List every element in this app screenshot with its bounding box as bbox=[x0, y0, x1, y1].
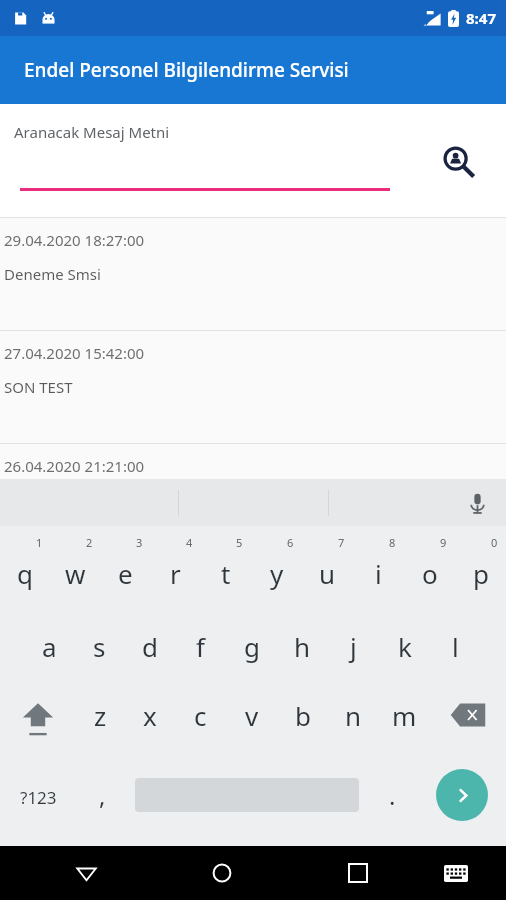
button[interactable]: Ana ekran bbox=[198, 849, 246, 897]
staticText: 26.04.2020 21:21:00 bbox=[4, 456, 145, 476]
staticText: 27.04.2020 15:42:00 bbox=[4, 343, 145, 363]
button[interactable]: 2 bbox=[50, 526, 100, 608]
button[interactable]: c bbox=[175, 684, 226, 762]
button[interactable]: 7 bbox=[302, 526, 353, 608]
button[interactable]: x bbox=[125, 684, 175, 762]
staticText: Aranacak Mesaj Metni bbox=[14, 122, 170, 142]
button[interactable]: Sesli giris bbox=[460, 486, 494, 520]
staticText: k bbox=[398, 629, 412, 664]
staticText: Endel Personel Bilgilendirme Servisi bbox=[24, 57, 349, 83]
button[interactable]: f bbox=[175, 608, 226, 684]
button[interactable]: Son uygulamalar bbox=[334, 849, 382, 897]
button[interactable]: a bbox=[24, 608, 74, 684]
button[interactable]: Gonder bbox=[418, 762, 506, 840]
button[interactable]: Klavyeyi gizle bbox=[432, 849, 480, 897]
staticText: e bbox=[118, 556, 133, 591]
button[interactable]: ?123 bbox=[0, 762, 76, 840]
staticText: 2 bbox=[86, 535, 93, 550]
staticText: 5 bbox=[236, 535, 243, 550]
button[interactable]: z bbox=[75, 684, 125, 762]
staticText: 8:47 bbox=[466, 8, 496, 28]
button[interactable]: 6 bbox=[251, 526, 302, 608]
staticText: x bbox=[143, 698, 157, 733]
button[interactable]: m bbox=[379, 684, 430, 762]
staticText: u bbox=[319, 556, 336, 591]
button[interactable]: 5 bbox=[200, 526, 251, 608]
button[interactable]: 27.04.2020 15:42:00 bbox=[0, 331, 506, 443]
staticText: s bbox=[93, 629, 106, 664]
staticText: SON TEST bbox=[4, 377, 73, 397]
staticText: w bbox=[65, 556, 86, 591]
staticText: h bbox=[294, 629, 311, 664]
staticText: 8 bbox=[389, 535, 396, 550]
button[interactable]: v bbox=[226, 684, 277, 762]
staticText: p bbox=[473, 556, 489, 591]
button[interactable]: 4 bbox=[150, 526, 200, 608]
button[interactable]: 29.04.2020 18:27:00 bbox=[0, 218, 506, 330]
staticText: t bbox=[221, 556, 231, 591]
button[interactable]: g bbox=[226, 608, 277, 684]
button[interactable]: j bbox=[328, 608, 379, 684]
button[interactable]: Shift bbox=[0, 684, 75, 762]
staticText: Deneme Smsi bbox=[4, 264, 101, 284]
staticText: j bbox=[350, 629, 357, 664]
button[interactable]: , bbox=[76, 762, 128, 840]
button[interactable]: Bosluk bbox=[128, 762, 366, 840]
button[interactable]: h bbox=[277, 608, 328, 684]
staticText: 0 bbox=[491, 535, 498, 550]
staticText: i bbox=[375, 556, 382, 591]
button[interactable]: 26.04.2020 21:21:00 bbox=[0, 444, 506, 479]
staticText: z bbox=[94, 698, 107, 733]
button[interactable]: . bbox=[366, 762, 418, 840]
button[interactable]: s bbox=[74, 608, 124, 684]
button[interactable]: 3 bbox=[100, 526, 150, 608]
staticText: ?123 bbox=[20, 786, 57, 809]
staticText: f bbox=[196, 629, 205, 664]
staticText: b bbox=[295, 698, 311, 733]
staticText: l bbox=[452, 629, 459, 664]
button[interactable]: Geri bbox=[62, 849, 110, 897]
staticText: a bbox=[42, 629, 57, 664]
staticText: c bbox=[194, 698, 207, 733]
staticText: g bbox=[244, 629, 260, 664]
button[interactable]: d bbox=[124, 608, 175, 684]
staticText: , bbox=[99, 779, 106, 812]
button[interactable]: b bbox=[277, 684, 328, 762]
staticText: r bbox=[170, 556, 181, 591]
staticText: 1 bbox=[36, 535, 43, 550]
staticText: v bbox=[245, 698, 259, 733]
staticText: 29.04.2020 18:27:00 bbox=[4, 230, 145, 250]
button[interactable]: 0 bbox=[455, 526, 506, 608]
button[interactable]: Ara bbox=[428, 131, 490, 193]
button[interactable]: 1 bbox=[0, 526, 50, 608]
button[interactable]: 8 bbox=[353, 526, 404, 608]
staticText: d bbox=[142, 629, 158, 664]
button[interactable]: n bbox=[328, 684, 379, 762]
staticText: 3 bbox=[136, 535, 143, 550]
staticText: m bbox=[392, 698, 417, 733]
staticText: y bbox=[270, 556, 284, 591]
staticText: n bbox=[345, 698, 362, 733]
button[interactable]: 9 bbox=[404, 526, 455, 608]
button[interactable]: l bbox=[430, 608, 481, 684]
staticText: 6 bbox=[287, 535, 294, 550]
staticText: 9 bbox=[440, 535, 447, 550]
staticText: 7 bbox=[338, 535, 345, 550]
staticText: . bbox=[389, 779, 396, 812]
staticText: o bbox=[422, 556, 438, 591]
button[interactable]: Sil bbox=[430, 684, 506, 762]
button[interactable]: k bbox=[379, 608, 430, 684]
staticText: 4 bbox=[186, 535, 193, 550]
staticText: q bbox=[17, 556, 33, 591]
